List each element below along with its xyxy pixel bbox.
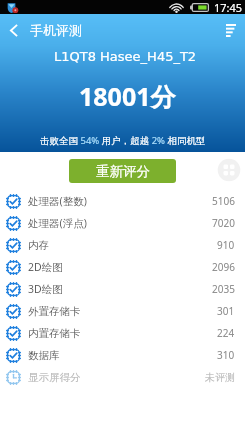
button[interactable]: 显示屏得分 [0,366,245,388]
staticText: 显示屏得分 [28,371,81,384]
staticText: 处理器(整数) [28,194,87,208]
staticText: 7020 [212,216,235,230]
staticText: L1QT8 Hasee_H45_T2 [54,49,197,64]
staticText: 301 [217,304,235,318]
staticText: 外置存储卡 [28,305,81,318]
staticText: 3D绘图 [28,282,63,296]
staticText: 未评测 [205,371,235,384]
staticText: 17:45 [214,0,243,14]
staticText: 2D绘图 [28,260,63,274]
button[interactable]: 处理器(整数) [0,190,245,212]
staticText: 2096 [212,260,235,274]
button[interactable]: 内存 [0,234,245,256]
staticText: 重新评分 [96,163,150,180]
button[interactable]: 3D绘图 [0,278,245,300]
staticText: 手机评测 [30,22,82,38]
staticText: 5106 [212,194,235,208]
staticText: 内置存储卡 [28,327,81,340]
staticText: 310 [217,348,235,362]
staticText: 击败全国 54% 用户，超越 2% 相同机型 [40,134,206,147]
staticText: 224 [217,326,235,340]
staticText: 数据库 [28,349,60,362]
staticText: 2035 [212,282,235,296]
staticText: 处理器(浮点) [28,216,87,230]
button[interactable]: Menu [221,15,245,45]
staticText: 18001分 [79,79,176,113]
staticText: 内存 [28,239,49,252]
button[interactable]: 外置存储卡 [0,300,245,322]
button[interactable]: 数据库 [0,344,245,366]
button[interactable]: 2D绘图 [0,256,245,278]
button[interactable]: 内置存储卡 [0,322,245,344]
button[interactable]: Back [0,15,28,45]
button[interactable]: 重新评分 [69,159,176,183]
button[interactable]: 处理器(浮点) [0,212,245,234]
staticText: 910 [217,238,235,252]
